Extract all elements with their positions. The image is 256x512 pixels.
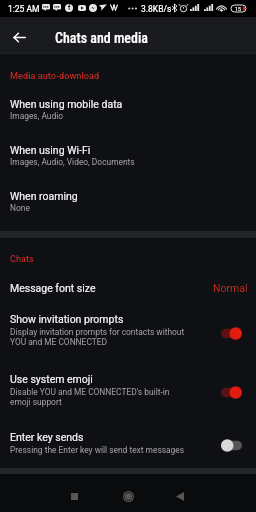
- staticText: Enter key sends: [10, 431, 84, 443]
- staticText: None: [10, 203, 30, 213]
- button[interactable]: Back: [0, 17, 37, 54]
- staticText: Pressing the Enter key will send text me…: [10, 445, 185, 455]
- staticText: When roaming: [10, 190, 78, 202]
- button[interactable]: Home: [116, 484, 140, 508]
- button[interactable]: Message font size: [0, 277, 256, 299]
- staticText: Normal: [213, 282, 248, 294]
- staticText: f: [68, 4, 71, 12]
- staticText: Show invitation prompts: [10, 313, 124, 325]
- staticText: When using Wi-Fi: [10, 144, 91, 156]
- staticText: Chats: [10, 253, 34, 264]
- staticText: When using mobile data: [10, 98, 123, 110]
- button[interactable]: Toggle: [221, 327, 242, 340]
- button[interactable]: Use system emoji: [0, 373, 256, 409]
- staticText: Media auto-download: [10, 70, 100, 81]
- button[interactable]: When using mobile data: [0, 98, 256, 138]
- staticText: 1:25 AM: [8, 4, 40, 14]
- staticText: Use system emoji: [10, 373, 93, 385]
- button[interactable]: Recents: [62, 484, 86, 508]
- staticText: Display invitation prompts for contacts …: [10, 327, 188, 347]
- button[interactable]: Toggle: [221, 386, 242, 399]
- staticText: Images, Audio: [10, 111, 64, 121]
- button[interactable]: Enter key sends: [0, 431, 256, 456]
- staticText: 15: [235, 5, 241, 12]
- staticText: Disable YOU and ME CONNECTED's built-in …: [10, 387, 188, 407]
- button[interactable]: Show invitation prompts: [0, 313, 256, 349]
- staticText: Chats and media: [55, 30, 148, 46]
- button[interactable]: Toggle: [221, 439, 242, 452]
- staticText: 3.8KB/s: [141, 4, 172, 14]
- button[interactable]: When using Wi-Fi: [0, 144, 256, 184]
- staticText: Images, Audio, Video, Documents: [10, 157, 135, 167]
- button[interactable]: When roaming: [0, 190, 256, 230]
- button[interactable]: Back: [168, 484, 192, 508]
- staticText: Message font size: [10, 282, 96, 294]
